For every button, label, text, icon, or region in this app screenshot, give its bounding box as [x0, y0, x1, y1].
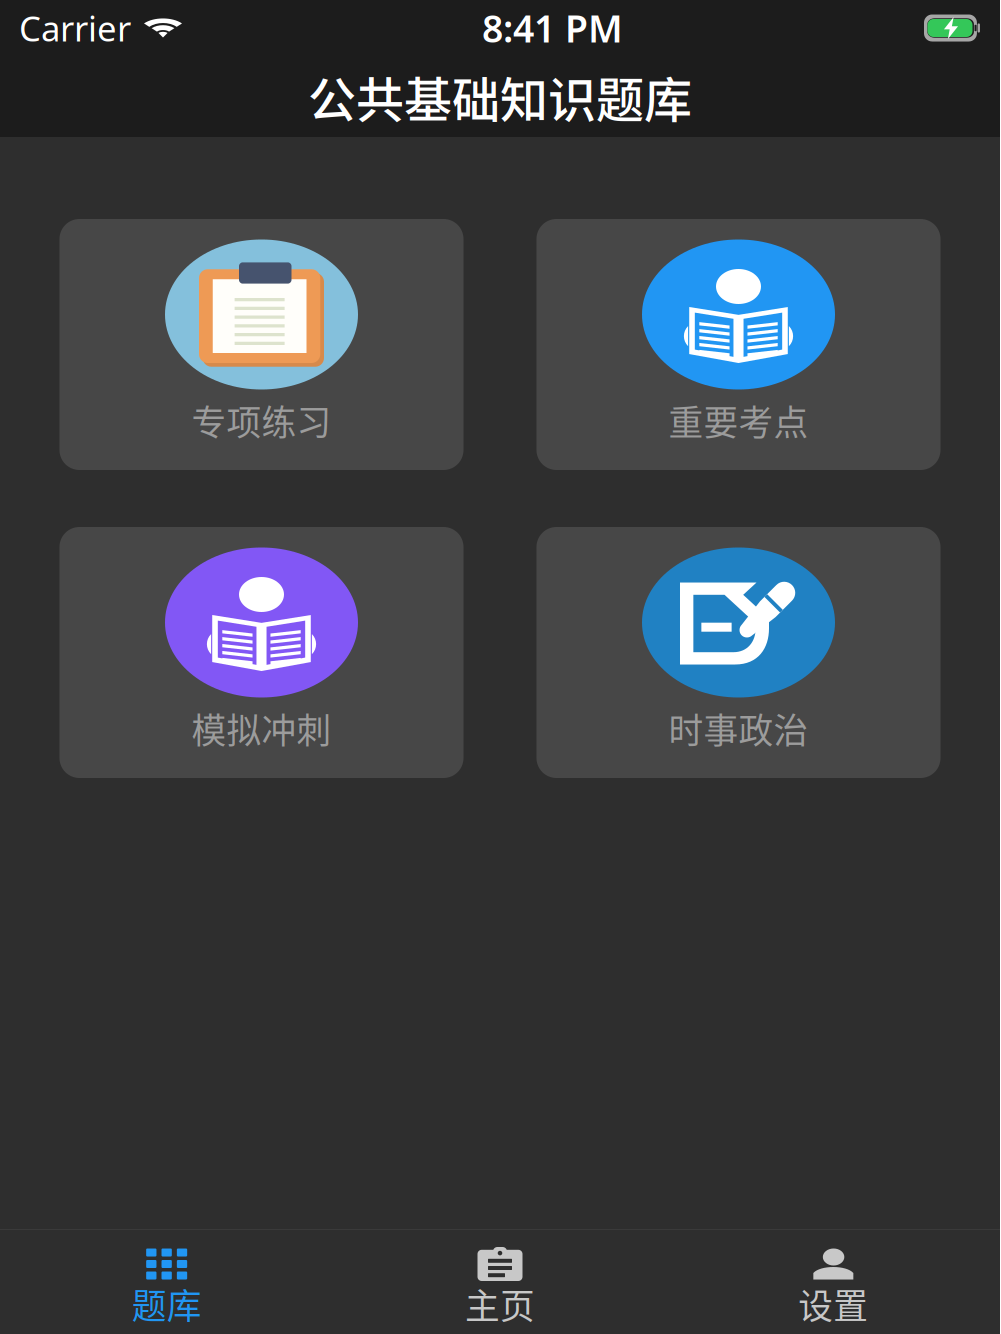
staticText: 主页 [465, 1279, 535, 1329]
staticText: 题库 [132, 1279, 202, 1329]
button[interactable]: 模拟冲刺 [59, 527, 463, 778]
button[interactable]: 时事政治 [536, 527, 940, 778]
button[interactable]: 设置 [667, 1230, 1000, 1334]
staticText: 公共基础知识题库 [308, 62, 692, 131]
staticText: 模拟冲刺 [191, 703, 331, 754]
button[interactable]: 专项练习 [59, 219, 463, 470]
staticText: 重要考点 [668, 395, 808, 446]
button[interactable]: 题库 [0, 1230, 333, 1334]
staticText: 时事政治 [668, 703, 808, 754]
staticText: Carrier [19, 5, 131, 51]
staticText: 专项练习 [191, 395, 331, 446]
staticText: 设置 [798, 1279, 868, 1329]
staticText: 8:41 PM [482, 3, 623, 53]
button[interactable]: 主页 [333, 1230, 667, 1334]
button[interactable]: 重要考点 [536, 219, 940, 470]
